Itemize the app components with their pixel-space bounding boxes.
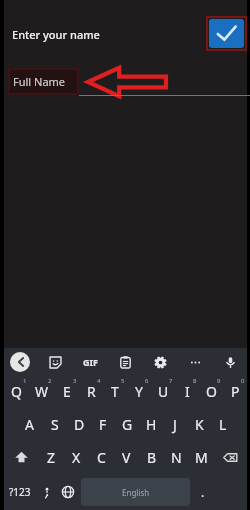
button[interactable]: F [91,408,115,441]
staticText: 8 [193,377,197,385]
button[interactable]: C [89,441,114,474]
button[interactable]: W [29,375,54,408]
button[interactable]: B [139,441,164,474]
button[interactable]: More options [184,351,206,373]
button[interactable]: ?123 [4,474,36,510]
button[interactable]: M [189,441,214,474]
staticText: O [206,382,217,401]
staticText: T [111,382,119,401]
staticText: 5 [121,377,125,385]
staticText: D [74,415,85,434]
button[interactable]: O [199,375,223,408]
button[interactable]: GIF [80,352,101,372]
button[interactable]: English [81,478,190,506]
button[interactable]: X [64,441,89,474]
staticText: W [35,382,49,401]
staticText: 2 [48,377,52,385]
staticText: 3 [73,377,77,385]
button[interactable]: Clipboard [114,351,136,373]
button[interactable]: A [17,408,42,441]
button[interactable]: Stickers [44,351,66,373]
staticText: H [146,415,157,434]
button[interactable]: D [67,408,91,441]
button[interactable]: Settings [149,351,171,373]
button[interactable]: T [103,375,127,408]
staticText: C [97,448,106,467]
staticText: K [195,415,204,434]
staticText: R [87,382,96,401]
button[interactable]: . [192,474,214,510]
button[interactable]: Back [10,352,30,372]
staticText: V [122,448,131,467]
staticText: X [72,448,81,467]
button[interactable]: V [114,441,139,474]
staticText: 6 [145,377,149,385]
button[interactable]: I [175,375,199,408]
staticText: J [173,415,177,434]
staticText: E [63,382,71,401]
staticText: N [171,448,182,467]
button[interactable]: H [139,408,163,441]
staticText: . [201,484,205,500]
staticText: 1 [23,377,27,385]
staticText: F [99,415,107,434]
staticText: P [231,382,240,401]
staticText: 0 [241,377,245,385]
staticText: 7 [169,377,173,385]
button[interactable]: Y [127,375,151,408]
button[interactable]: G [115,408,139,441]
staticText: Q [11,382,22,401]
button[interactable]: L [211,408,235,441]
button[interactable]: E [54,375,79,408]
button[interactable]: Backspace [214,441,247,474]
staticText: Y [135,382,143,401]
button[interactable]: P [223,375,247,408]
button[interactable]: Voice input [219,351,241,373]
staticText: S [51,415,59,434]
staticText: I [185,382,190,401]
staticText: L [219,415,227,434]
staticText: Enter your name [12,27,100,42]
staticText: 4 [97,377,101,385]
staticText: Z [47,448,56,467]
button[interactable]: S [42,408,67,441]
staticText: M [195,448,208,467]
button[interactable]: Shift [4,441,38,474]
staticText: A [25,415,34,434]
button[interactable]: Confirm [209,19,244,48]
staticText: ?123 [9,485,31,499]
button[interactable]: Q [4,375,29,408]
button[interactable]: Change language [57,474,79,510]
button[interactable]: R [79,375,103,408]
button[interactable]: K [187,408,211,441]
button[interactable]: U [151,375,175,408]
button[interactable]: N [164,441,189,474]
button[interactable]: Z [38,441,64,474]
button[interactable]: J [163,408,187,441]
staticText: G [122,415,133,434]
button[interactable]: Full Name [13,74,66,89]
staticText: 9 [217,377,221,385]
staticText: English [122,487,150,498]
staticText: B [147,448,157,467]
button[interactable]: Comma [36,474,57,510]
staticText: GIF [83,356,98,368]
staticText: U [158,382,169,401]
